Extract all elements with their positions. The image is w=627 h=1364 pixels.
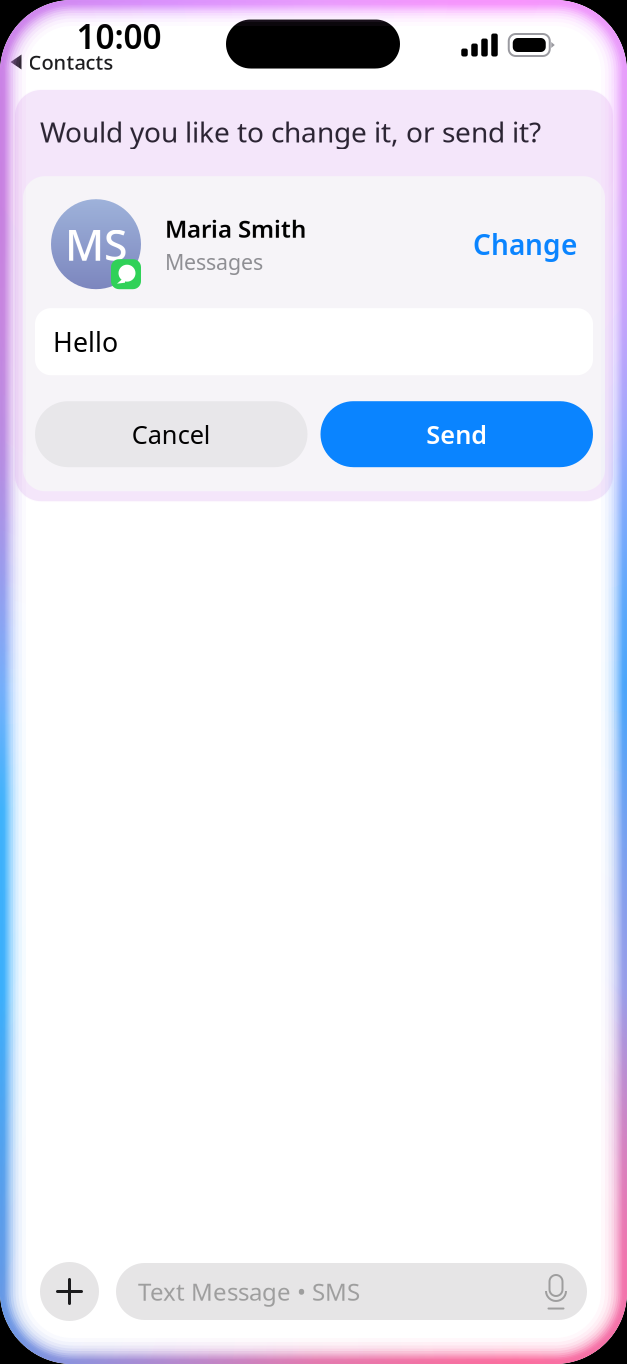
staticText: Would you like to change it, or send it? — [40, 113, 541, 150]
staticText: Maria Smith — [165, 213, 306, 244]
button[interactable]: Add attachment — [40, 1262, 99, 1321]
staticText: Cancel — [132, 417, 211, 451]
staticText: Hello — [53, 324, 118, 359]
staticText: Text Message • SMS — [138, 1276, 360, 1307]
button[interactable]: Change — [473, 216, 605, 273]
button[interactable]: Contacts — [4, 44, 119, 80]
button[interactable]: Cancel — [35, 401, 307, 467]
staticText: 10:00 — [76, 14, 161, 58]
staticText: Messages — [165, 247, 263, 276]
staticText: Change — [473, 226, 577, 263]
staticText: MS — [65, 216, 127, 273]
button[interactable]: Dictate — [543, 1273, 569, 1309]
button[interactable]: Send — [320, 401, 593, 467]
staticText: Contacts — [28, 49, 113, 75]
staticText: Send — [426, 417, 487, 451]
